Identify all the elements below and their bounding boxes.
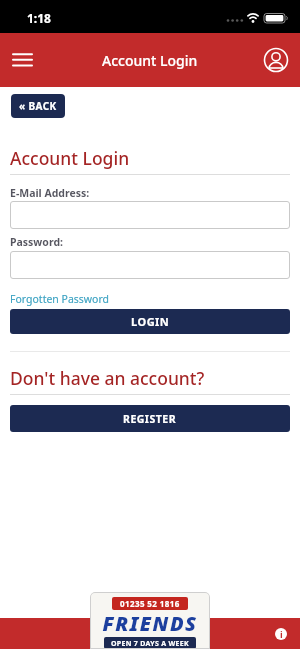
staticText: 1:18 xyxy=(27,10,51,26)
button[interactable] xyxy=(10,251,290,279)
staticText: 01235 52 1816 xyxy=(120,598,180,609)
button[interactable]: LOGIN xyxy=(10,309,290,334)
staticText: E-Mail Address: xyxy=(10,186,90,200)
staticText: FRIENDS xyxy=(102,610,198,637)
staticText: LOGIN xyxy=(131,314,170,329)
button[interactable]: REGISTER xyxy=(10,405,290,432)
button[interactable] xyxy=(10,201,290,229)
button[interactable]: « BACK xyxy=(11,94,65,118)
staticText: « BACK xyxy=(19,99,57,113)
staticText: Don't have an account? xyxy=(10,366,205,390)
staticText: Account Login xyxy=(10,146,130,170)
button[interactable]: 01235 52 1816 xyxy=(90,592,210,649)
staticText: Password: xyxy=(10,235,63,249)
button[interactable]: Forgotten Password xyxy=(10,292,110,306)
button[interactable] xyxy=(260,44,292,76)
staticText: Account Login xyxy=(102,51,198,70)
staticText: REGISTER xyxy=(123,412,177,426)
button[interactable]: i xyxy=(275,628,287,640)
staticText: OPEN 7 DAYS A WEEK xyxy=(111,639,189,647)
staticText: i xyxy=(280,628,283,639)
button[interactable] xyxy=(6,44,38,76)
